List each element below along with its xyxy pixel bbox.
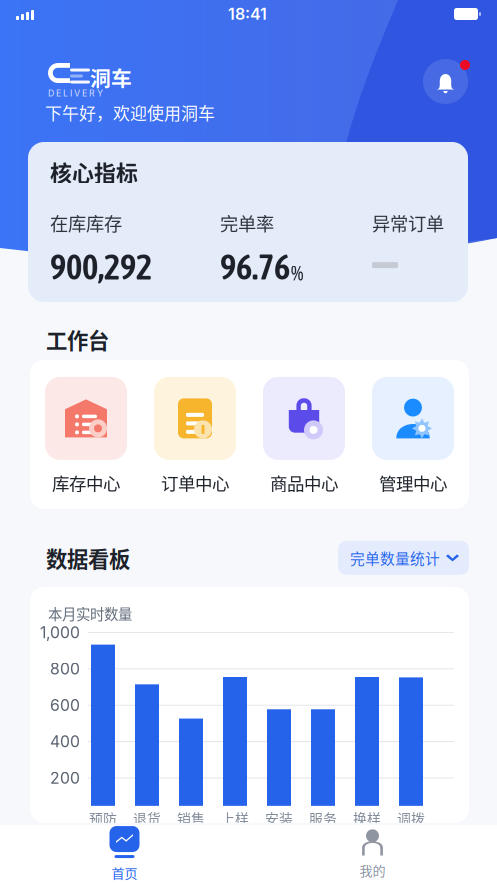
- staticText: 首页: [111, 863, 137, 882]
- staticText: 在库库存: [50, 210, 122, 236]
- button[interactable]: 管理中心: [372, 377, 454, 494]
- staticText: 我的: [359, 860, 385, 879]
- staticText: D E L I V E R Y: [48, 88, 103, 99]
- staticText: 销售: [177, 808, 205, 828]
- staticText: 1,000: [40, 623, 80, 642]
- button[interactable]: Notifications: [423, 59, 470, 105]
- staticText: 96.76: [220, 247, 290, 287]
- staticText: 库存中心: [52, 470, 120, 495]
- staticText: 安装: [265, 808, 293, 828]
- staticText: %: [291, 262, 303, 285]
- button[interactable]: 商品中心: [263, 377, 345, 494]
- staticText: 800: [50, 659, 80, 678]
- staticText: 18:41: [228, 4, 267, 24]
- staticText: 完单数量统计: [350, 547, 440, 568]
- staticText: 订单中心: [161, 470, 229, 495]
- button[interactable]: 订单中心: [154, 377, 236, 494]
- staticText: 调拨: [397, 808, 425, 828]
- staticText: 洞车: [90, 62, 132, 92]
- staticText: 换样: [353, 808, 381, 828]
- staticText: 数据看板: [46, 542, 130, 573]
- staticText: 管理中心: [379, 470, 447, 495]
- button[interactable]: 我的: [248, 825, 496, 883]
- button[interactable]: 完单数量统计: [338, 541, 469, 575]
- staticText: 完单率: [220, 210, 274, 236]
- staticText: 400: [50, 732, 80, 751]
- staticText: 下午好，欢迎使用洞车: [45, 100, 215, 124]
- staticText: 200: [50, 768, 80, 787]
- staticText: 本月实时数量: [48, 603, 132, 624]
- staticText: 商品中心: [270, 470, 338, 495]
- staticText: 服务: [309, 808, 337, 828]
- staticText: 异常订单: [372, 210, 444, 236]
- staticText: 核心指标: [50, 156, 138, 188]
- staticText: 工作台: [46, 324, 109, 355]
- staticText: 预防: [89, 808, 117, 828]
- staticText: 600: [50, 696, 80, 715]
- staticText: 退货: [133, 808, 161, 828]
- staticText: 上样: [221, 808, 249, 828]
- button[interactable]: 首页: [0, 825, 248, 883]
- staticText: 900,292: [50, 247, 152, 287]
- button[interactable]: 库存中心: [45, 377, 127, 494]
